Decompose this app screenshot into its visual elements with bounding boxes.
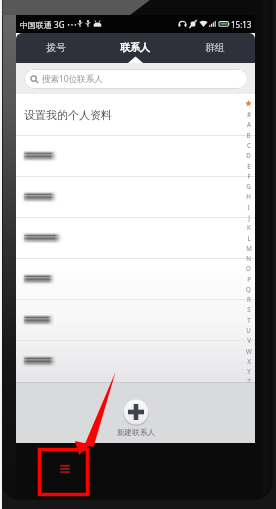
staticText: M	[246, 244, 252, 252]
staticText: N	[246, 254, 251, 262]
staticText: G	[246, 182, 251, 190]
staticText: 设置我的个人资料	[24, 108, 112, 122]
staticText: Y	[247, 367, 251, 375]
button[interactable]: Menu	[55, 461, 75, 477]
staticText: A	[247, 120, 251, 128]
staticText: 新建联系人	[117, 428, 155, 438]
button[interactable]: 拨号	[16, 33, 95, 63]
staticText: K	[247, 223, 251, 231]
button[interactable]: 搜索10位联系人	[24, 69, 248, 89]
staticText: F	[247, 172, 251, 180]
button[interactable]	[16, 300, 255, 340]
button[interactable]	[16, 218, 255, 258]
staticText: E	[247, 162, 251, 170]
staticText: 群组	[205, 41, 225, 54]
staticText: B	[246, 131, 251, 139]
button[interactable]	[16, 136, 255, 176]
staticText: R	[247, 295, 251, 303]
staticText: H	[246, 192, 251, 200]
button[interactable]	[16, 259, 255, 299]
button[interactable]: Alphabet index	[242, 94, 255, 382]
button[interactable]: 联系人	[95, 33, 175, 63]
staticText: 中国联通 3G	[20, 19, 65, 30]
staticText: D	[246, 151, 251, 159]
staticText: I	[247, 203, 250, 211]
button[interactable]: 群组	[175, 33, 255, 63]
staticText: W	[246, 347, 252, 355]
staticText: Z	[247, 377, 251, 385]
button[interactable]: 新建联系人	[117, 399, 155, 438]
staticText: 拨号	[46, 41, 66, 54]
button[interactable]	[16, 341, 255, 381]
staticText: J	[248, 213, 250, 221]
button[interactable]: 设置我的个人资料	[16, 94, 255, 135]
button[interactable]	[16, 177, 255, 217]
staticText: Q	[246, 285, 251, 293]
staticText: C	[247, 141, 251, 149]
staticText: #	[247, 110, 251, 118]
staticText: 15:13	[231, 19, 252, 30]
staticText: P	[247, 275, 251, 283]
staticText: 搜索10位联系人	[42, 73, 103, 85]
staticText: T	[247, 316, 251, 324]
staticText: U	[246, 326, 251, 334]
staticText: O	[246, 264, 251, 272]
staticText: 联系人	[120, 41, 150, 54]
staticText: X	[247, 357, 251, 365]
staticText: V	[247, 336, 251, 344]
staticText: S	[247, 305, 251, 313]
staticText: L	[247, 234, 251, 242]
